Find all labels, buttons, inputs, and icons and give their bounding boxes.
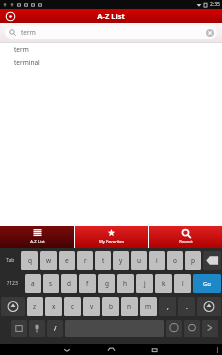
button[interactable]: k <box>155 274 172 293</box>
button[interactable]: Shift <box>1 297 25 316</box>
button[interactable]: r <box>77 251 93 270</box>
staticText: j <box>144 279 146 288</box>
button[interactable]: / <box>47 320 63 337</box>
button[interactable]: e <box>59 251 75 270</box>
staticText: t <box>102 256 105 265</box>
staticText: f <box>86 279 89 288</box>
button[interactable]: p <box>185 251 201 270</box>
button[interactable]: Hide keyboard <box>59 344 75 355</box>
staticText: c <box>71 302 75 311</box>
button[interactable]: terminal <box>0 56 222 69</box>
button[interactable]: i <box>149 251 165 270</box>
button[interactable]: f <box>79 274 96 293</box>
staticText: v <box>90 302 94 311</box>
button[interactable]: z <box>27 297 43 316</box>
button[interactable]: Settings <box>184 320 200 337</box>
button[interactable]: Tab <box>1 251 19 270</box>
staticText: r <box>84 256 87 265</box>
button[interactable]: u <box>131 251 147 270</box>
button[interactable]: b <box>102 297 119 316</box>
button[interactable]: Input method <box>11 320 27 337</box>
staticText: n <box>127 302 132 311</box>
button[interactable]: . <box>178 297 195 316</box>
staticText: A-Z List <box>97 11 125 21</box>
button[interactable]: Recents <box>147 344 163 355</box>
button[interactable]: s <box>43 274 59 293</box>
staticText: Go <box>203 280 211 288</box>
staticText: term <box>14 45 29 54</box>
staticText: i <box>156 256 158 265</box>
staticText: q <box>28 256 32 265</box>
button[interactable]: x <box>45 297 62 316</box>
button[interactable]: a <box>25 274 41 293</box>
staticText: u <box>137 256 142 265</box>
button[interactable]: t <box>95 251 111 270</box>
button[interactable]: q <box>21 251 38 270</box>
button[interactable]: n <box>121 297 138 316</box>
button[interactable]: ?123 <box>1 274 23 293</box>
staticText: d <box>67 279 71 288</box>
button[interactable]: term <box>0 43 222 56</box>
staticText: / <box>54 324 57 333</box>
button[interactable]: term <box>5 26 217 39</box>
staticText: k <box>162 279 166 288</box>
button[interactable]: Voice input <box>29 320 45 337</box>
staticText: h <box>123 279 128 288</box>
button[interactable]: A-Z List <box>0 226 74 248</box>
button[interactable]: Go <box>193 274 221 293</box>
button[interactable]: w <box>40 251 57 270</box>
staticText: w <box>46 256 52 265</box>
button[interactable]: v <box>83 297 100 316</box>
button[interactable]: y <box>113 251 129 270</box>
button[interactable]: m <box>140 297 157 316</box>
staticText: terminal <box>14 58 40 67</box>
button[interactable]: c <box>64 297 81 316</box>
staticText: m <box>145 302 152 311</box>
button[interactable]: Next <box>202 320 218 337</box>
staticText: z <box>33 302 37 311</box>
button[interactable]: Backspace <box>203 251 221 270</box>
staticText: l <box>182 279 184 288</box>
button[interactable]: Shift <box>197 297 221 316</box>
button[interactable]: d <box>61 274 77 293</box>
staticText: Recent <box>179 239 193 245</box>
staticText: x <box>52 302 56 311</box>
staticText: e <box>65 256 69 265</box>
button[interactable]: g <box>98 274 115 293</box>
staticText: s <box>49 279 53 288</box>
button[interactable]: My Favorites <box>75 226 148 248</box>
staticText: b <box>109 302 113 311</box>
button[interactable]: o <box>167 251 183 270</box>
staticText: a <box>31 279 35 288</box>
button[interactable]: j <box>136 274 153 293</box>
button[interactable]: , <box>159 297 176 316</box>
button[interactable]: Emoji <box>166 320 182 337</box>
staticText: y <box>119 256 123 265</box>
staticText: o <box>173 256 177 265</box>
staticText: ?123 <box>7 280 18 287</box>
staticText: . <box>186 302 188 311</box>
button[interactable]: Clear search <box>204 27 215 38</box>
button[interactable]: Home <box>103 344 119 355</box>
staticText: term <box>21 28 36 37</box>
button[interactable]: h <box>117 274 134 293</box>
button[interactable]: Up <box>5 11 16 22</box>
staticText: My Favorites <box>99 239 124 245</box>
staticText: , <box>167 302 169 311</box>
button[interactable]: Recent <box>149 226 222 248</box>
button[interactable]: l <box>174 274 191 293</box>
staticText: Tab <box>6 257 15 264</box>
staticText: g <box>105 279 109 288</box>
staticText: 2:35 <box>210 1 220 8</box>
staticText: p <box>191 256 195 265</box>
staticText: A-Z List <box>30 239 45 245</box>
